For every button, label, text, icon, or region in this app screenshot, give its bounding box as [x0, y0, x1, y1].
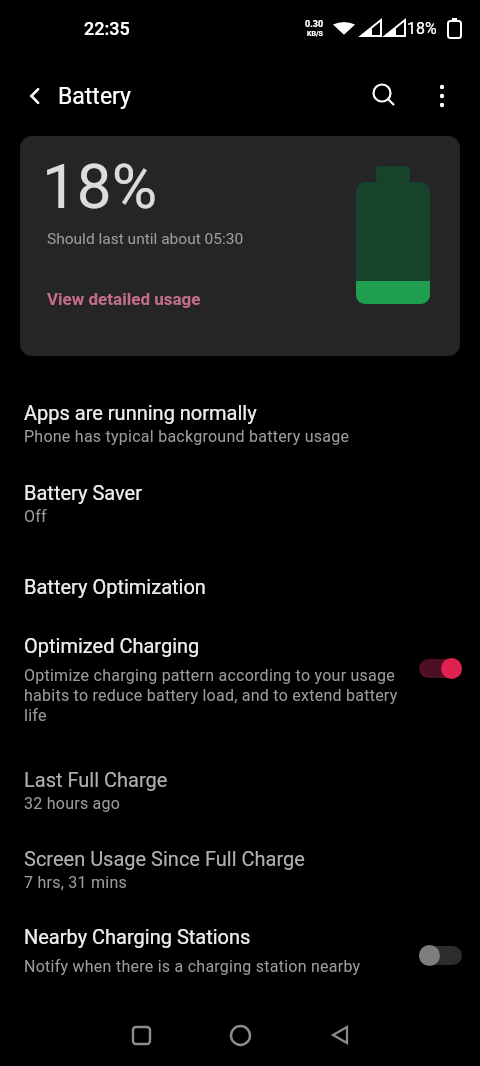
staticText: Notify when there is a charging station … [24, 957, 361, 976]
button[interactable] [122, 1016, 160, 1054]
staticText: 22:35 [84, 18, 130, 39]
button[interactable]: Last Full Charge [0, 768, 480, 813]
staticText: Apps are running normally [24, 401, 257, 424]
staticText: Screen Usage Since Full Charge [24, 847, 305, 870]
staticText: Optimized Charging [24, 634, 200, 657]
staticText: 18% [42, 150, 158, 223]
staticText: Nearby Charging Stations [24, 925, 251, 948]
button[interactable] [419, 945, 462, 966]
button[interactable] [18, 78, 54, 114]
button[interactable] [221, 1016, 259, 1054]
button[interactable]: View detailed usage [47, 289, 201, 309]
staticText: Optimize charging pattern according to y… [24, 666, 398, 725]
button[interactable]: Nearby Charging Stations [0, 925, 480, 976]
staticText: Off [24, 507, 47, 526]
staticText: Battery Optimization [24, 575, 206, 598]
staticText: 7 hrs, 31 mins [24, 873, 128, 892]
button[interactable]: Battery Optimization [0, 575, 480, 598]
staticText: 0.30 [305, 19, 324, 30]
staticText: Should last until about 05:30 [47, 230, 244, 248]
button[interactable]: Apps are running normally [0, 401, 480, 446]
button[interactable] [320, 1016, 358, 1054]
staticText: KB/S [307, 30, 323, 38]
staticText: Battery [58, 83, 131, 110]
button[interactable] [364, 76, 404, 116]
staticText: Battery Saver [24, 481, 142, 504]
button[interactable]: Battery Saver [0, 481, 480, 526]
button[interactable]: Screen Usage Since Full Charge [0, 847, 480, 892]
staticText: 32 hours ago [24, 794, 121, 813]
button[interactable]: Optimized Charging [0, 634, 480, 725]
button[interactable] [422, 76, 462, 116]
staticText: Phone has typical background battery usa… [24, 427, 350, 446]
staticText: 18% [407, 19, 437, 38]
staticText: Last Full Charge [24, 768, 168, 791]
button[interactable] [419, 658, 462, 679]
